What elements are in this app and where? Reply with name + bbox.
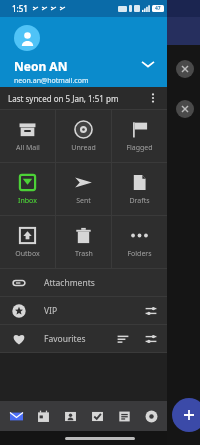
- staticText: Drafts: [129, 196, 150, 206]
- button[interactable]: Settings: [140, 405, 162, 427]
- staticText: Unread: [71, 143, 96, 153]
- button[interactable]: VIP: [0, 297, 167, 324]
- button[interactable]: Sort: [117, 333, 129, 345]
- button[interactable]: Notes: [113, 405, 135, 427]
- button[interactable]: Close: [176, 100, 194, 118]
- staticText: Last synced on 5 Jan, 1:51 pm: [8, 93, 119, 104]
- button[interactable]: Expand accounts: [141, 57, 155, 71]
- staticText: Sent: [76, 196, 91, 206]
- button[interactable]: Trash: [56, 216, 111, 268]
- button[interactable]: Folders: [112, 216, 167, 268]
- button[interactable]: Flagged: [112, 110, 167, 162]
- staticText: Favourites: [44, 333, 86, 345]
- staticText: 1:51: [12, 3, 28, 14]
- button[interactable]: Attachments: [0, 269, 167, 296]
- staticText: VIP: [44, 305, 58, 317]
- button[interactable]: Neon AN: [0, 17, 167, 87]
- button[interactable]: All Mail: [0, 110, 55, 162]
- button[interactable]: Close: [176, 60, 194, 78]
- button[interactable]: Drafts: [112, 163, 167, 215]
- staticText: Trash: [75, 249, 93, 259]
- staticText: 47: [155, 5, 161, 12]
- button[interactable]: More options: [147, 92, 159, 104]
- button[interactable]: Contacts: [59, 405, 81, 427]
- staticText: Inbox: [18, 196, 37, 206]
- button[interactable]: Favourites: [0, 325, 167, 352]
- staticText: Folders: [127, 249, 152, 259]
- button[interactable]: Compose: [172, 398, 200, 432]
- staticText: neon.an@hotmail.com: [14, 76, 89, 86]
- staticText: Attachments: [44, 277, 95, 289]
- button[interactable]: Sent: [56, 163, 111, 215]
- button[interactable]: Mail: [5, 405, 27, 427]
- button[interactable]: Filter: [145, 333, 157, 345]
- button[interactable]: Tasks: [86, 405, 108, 427]
- button[interactable]: Filter: [145, 305, 157, 317]
- button[interactable]: Outbox: [0, 216, 55, 268]
- button[interactable]: Calendar: [32, 405, 54, 427]
- button[interactable]: Inbox: [0, 163, 55, 215]
- staticText: Neon AN: [14, 58, 68, 74]
- staticText: Flagged: [126, 143, 153, 153]
- staticText: Outbox: [15, 249, 40, 259]
- staticText: All Mail: [16, 143, 40, 153]
- button[interactable]: Unread: [56, 110, 111, 162]
